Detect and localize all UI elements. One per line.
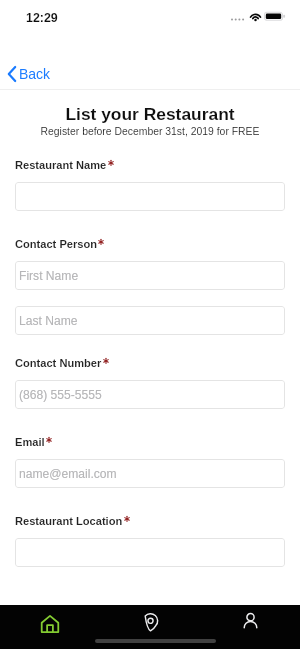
staticText: Contact Person — [15, 238, 97, 250]
staticText: name@email.com — [19, 467, 117, 481]
staticText: Register before December 31st, 2019 for … — [0, 126, 300, 138]
button[interactable]: Back — [4, 63, 55, 85]
staticText: Back — [19, 66, 51, 82]
staticText: Last Name — [19, 314, 78, 328]
staticText: List your Restaurant — [0, 104, 300, 123]
button[interactable] — [15, 182, 285, 211]
staticText: Email — [15, 436, 45, 448]
staticText: Contact Number — [15, 357, 102, 369]
staticText: 12:29 — [26, 11, 58, 25]
button[interactable]: name@email.com — [15, 459, 285, 488]
staticText: Restaurant Name — [15, 159, 107, 171]
button[interactable]: (868) 555-5555 — [15, 380, 285, 409]
button[interactable] — [15, 538, 285, 567]
staticText: First Name — [19, 269, 79, 283]
button[interactable]: First Name — [15, 261, 285, 290]
button[interactable]: Last Name — [15, 306, 285, 335]
staticText: Restaurant Location — [15, 515, 123, 527]
button[interactable]: Home — [10, 605, 90, 649]
staticText: (868) 555-5555 — [19, 388, 102, 402]
button[interactable]: Profile — [210, 605, 290, 649]
button[interactable]: Explore — [110, 605, 190, 649]
